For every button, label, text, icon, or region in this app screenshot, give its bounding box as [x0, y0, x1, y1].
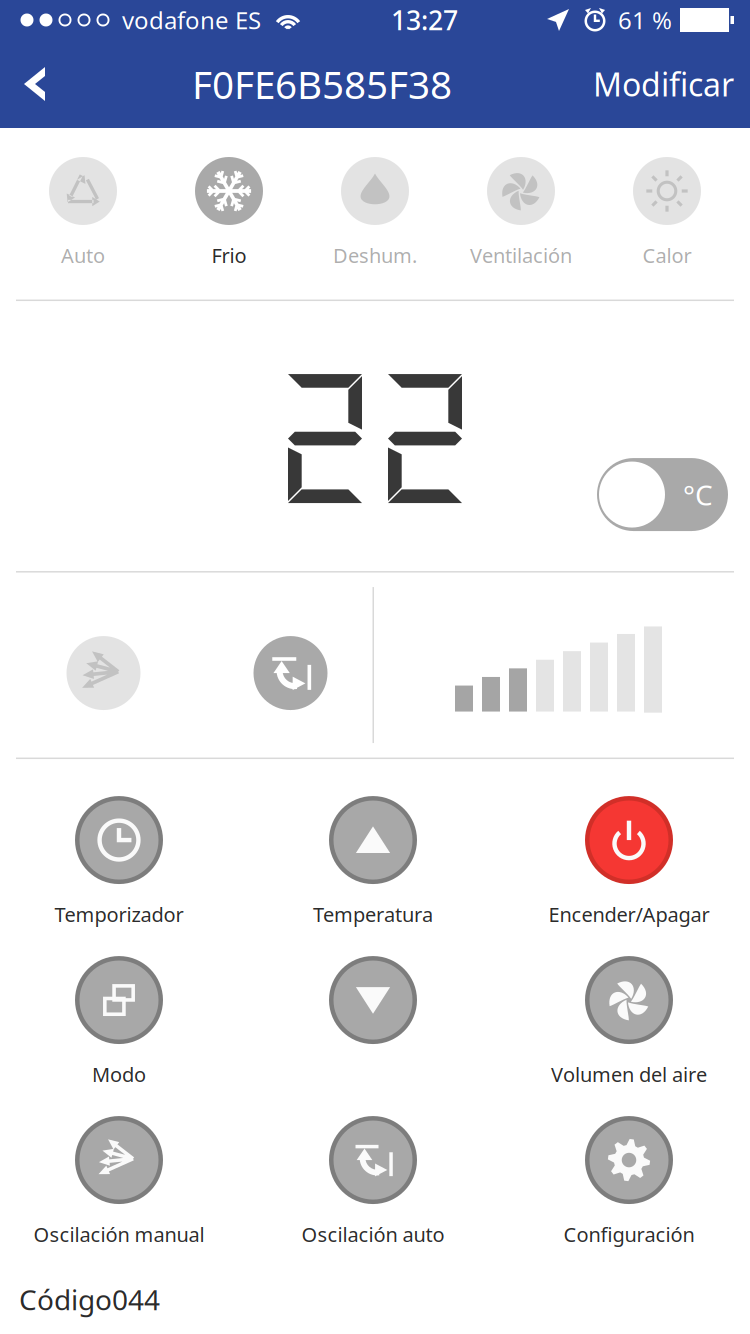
staticText: Ventilación	[470, 242, 572, 269]
staticText: Deshum.	[333, 242, 417, 269]
button[interactable]: Temperature unit	[597, 458, 728, 531]
button[interactable]: Deshum.	[302, 157, 448, 269]
staticText: Configuración	[563, 1221, 694, 1248]
button[interactable]: Temperatura	[238, 796, 508, 939]
staticText: Modo	[92, 1061, 146, 1088]
button[interactable]: Volumen del aire	[508, 956, 750, 1099]
button[interactable]	[238, 956, 508, 1099]
button[interactable]: Frio	[156, 157, 302, 269]
staticText: Temporizador	[54, 901, 183, 928]
staticText: Oscilación manual	[33, 1221, 204, 1248]
staticText: 13:27	[391, 2, 458, 38]
button[interactable]: Calor	[594, 157, 740, 269]
button[interactable]: Ventilación	[448, 157, 594, 269]
button[interactable]: Auto	[10, 157, 156, 269]
button[interactable]: Modo	[0, 956, 238, 1099]
button[interactable]: Temporizador	[0, 796, 238, 939]
button[interactable]: Back	[0, 40, 67, 128]
staticText: Auto	[61, 242, 105, 269]
staticText: Calor	[642, 242, 691, 269]
staticText: Frio	[211, 242, 246, 269]
staticText: Encender/Apagar	[548, 901, 709, 928]
staticText: Temperatura	[313, 901, 433, 928]
staticText: 61 %	[618, 4, 672, 36]
staticText: Modificar	[593, 63, 734, 105]
button[interactable]: Configuración	[508, 1116, 750, 1259]
button[interactable]: Manual swing	[0, 636, 207, 710]
button[interactable]: Auto swing	[207, 636, 374, 710]
staticText: Oscilación auto	[301, 1221, 444, 1248]
button[interactable]: Oscilación auto	[238, 1116, 508, 1259]
staticText: Código044	[19, 1281, 160, 1318]
button[interactable]: Modificar	[577, 37, 750, 131]
staticText: °C	[683, 476, 713, 513]
staticText: F0FE6B585F38	[192, 58, 452, 110]
button[interactable]: Encender/Apagar	[508, 796, 750, 939]
staticText: vodafone ES	[122, 4, 261, 36]
staticText: Volumen del aire	[551, 1061, 707, 1088]
button[interactable]: Oscilación manual	[0, 1116, 238, 1259]
